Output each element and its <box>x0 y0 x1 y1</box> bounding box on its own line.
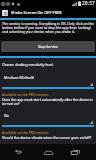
button[interactable]: Back <box>8 147 28 158</box>
staticText: Available on the PRO version. <box>2 92 50 97</box>
staticText: Does the app must start automatically af… <box>2 97 94 106</box>
button[interactable]: Medium (Default) <box>2 72 94 89</box>
button[interactable]: Stop Service <box>1 41 95 52</box>
staticText: Medium (Default) <box>4 75 35 80</box>
staticText: Stop Service <box>38 44 59 49</box>
staticText: No <box>4 113 10 118</box>
staticText: Choose shaking sensitivity level. <box>2 62 54 67</box>
staticText: Shake Screen On OFF FREE <box>11 10 62 15</box>
staticText: The service is running. Everything is OK… <box>2 21 94 34</box>
staticText: 20:37 <box>82 0 95 7</box>
staticText: Available on the PRO version. <box>2 130 50 135</box>
staticText: Should the device vibrate when the scree… <box>2 135 94 140</box>
button[interactable]: Shake Screen On OFF FREE <box>0 7 96 18</box>
button[interactable]: Recent apps <box>65 147 85 158</box>
button[interactable]: No <box>2 110 94 127</box>
button[interactable]: Home <box>38 147 58 158</box>
